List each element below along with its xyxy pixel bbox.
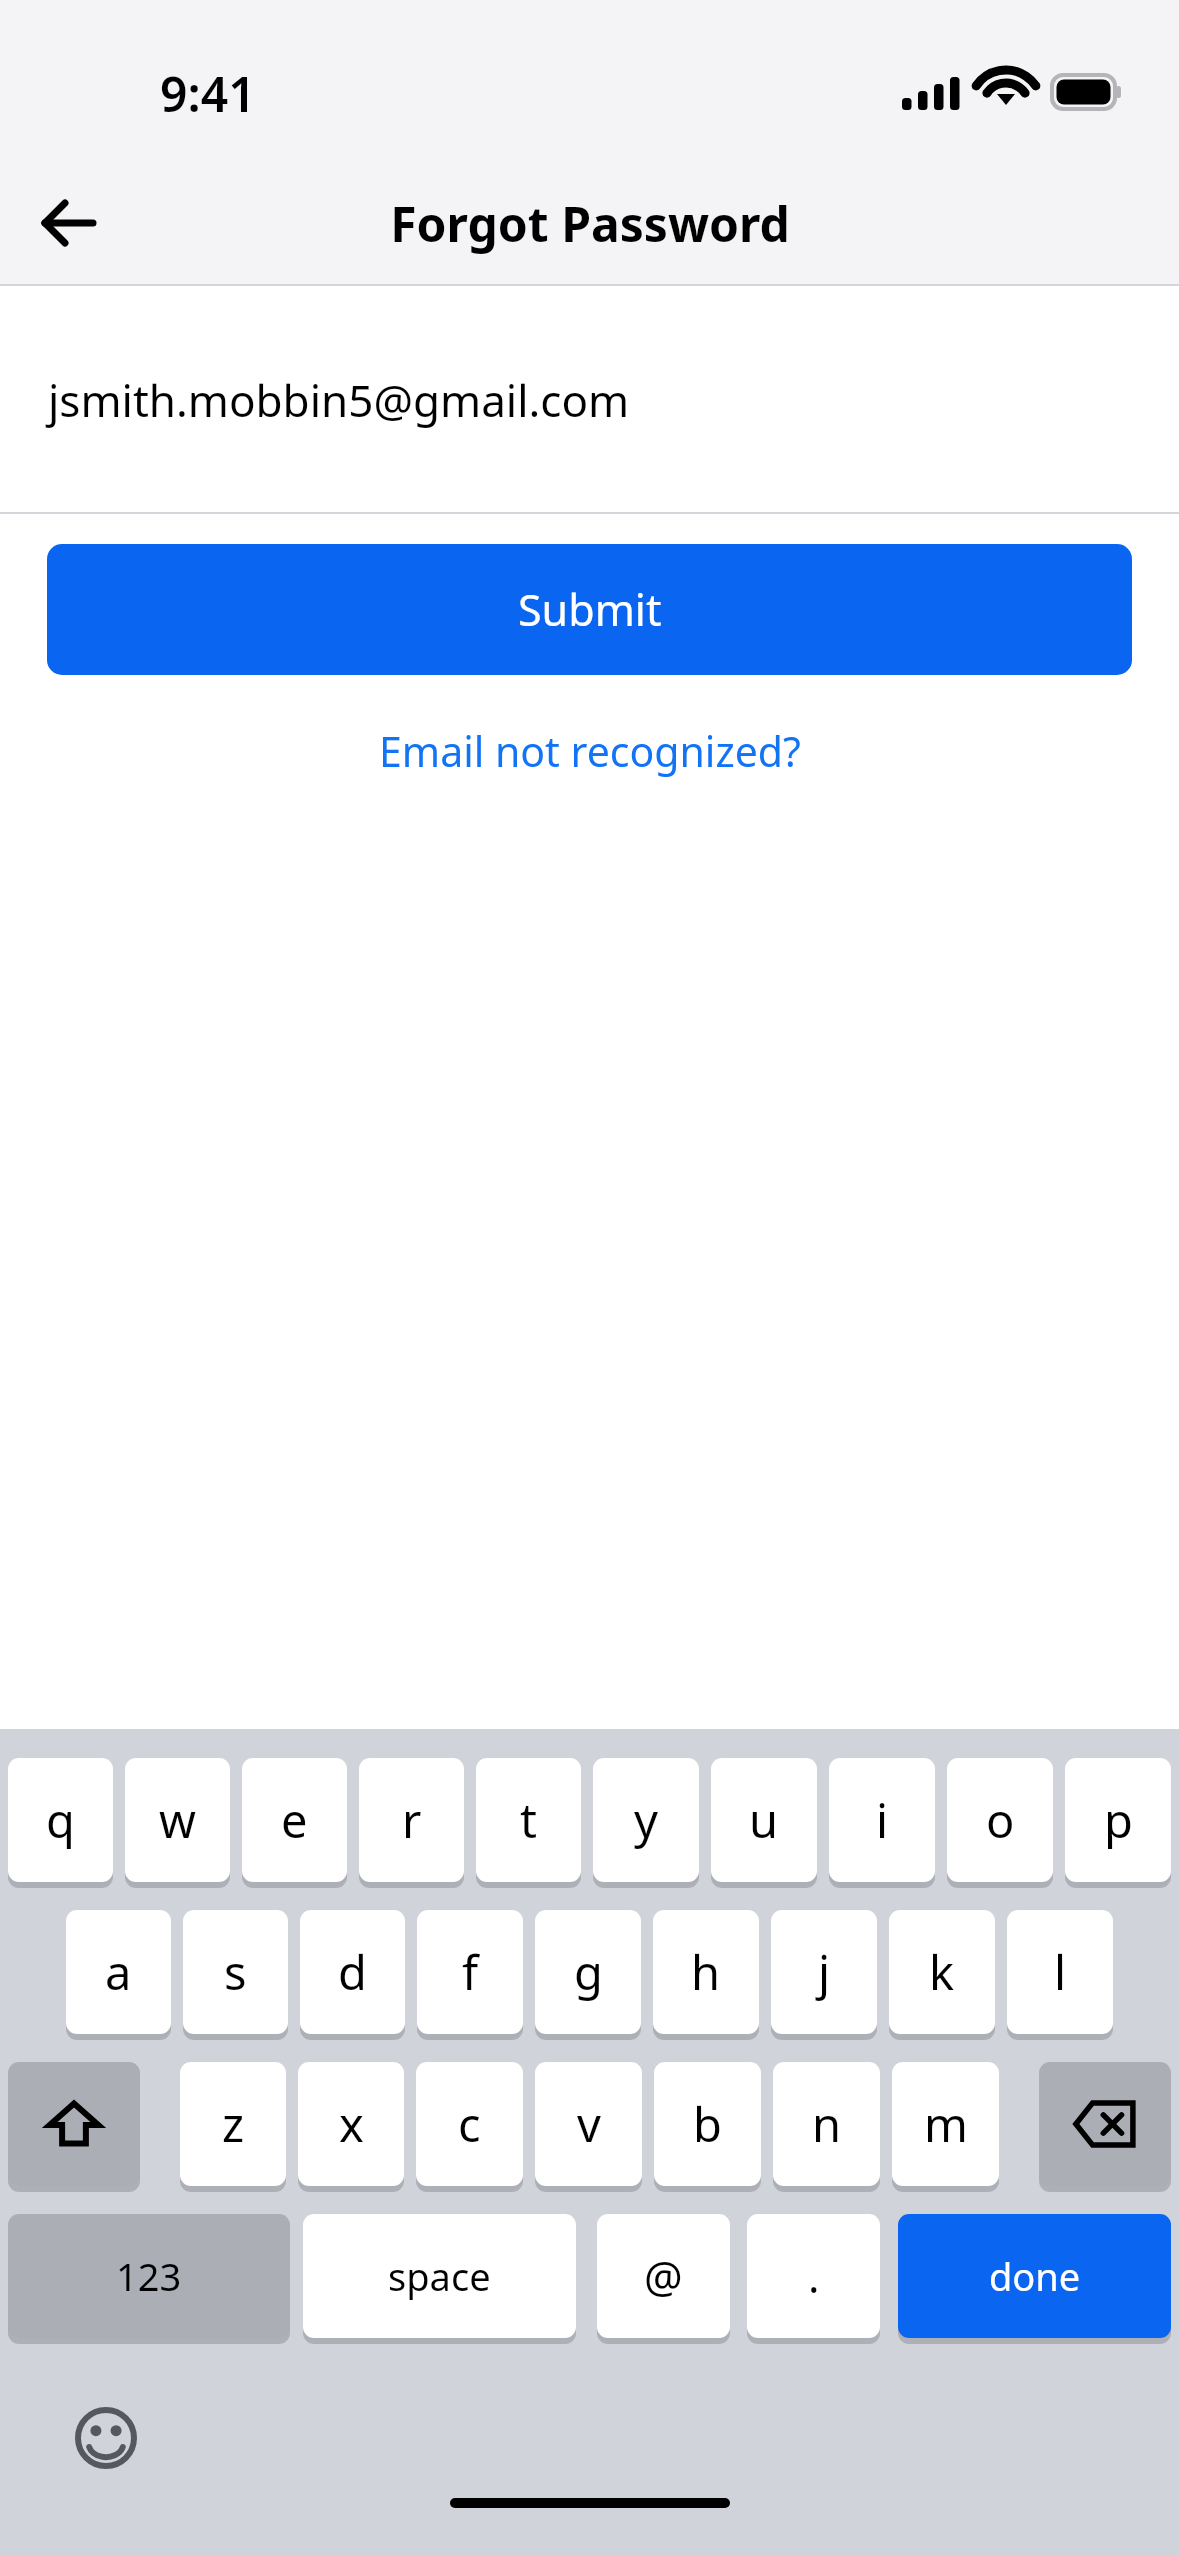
staticText: z — [222, 2092, 245, 2156]
button[interactable]: Email not recognized? — [359, 713, 821, 789]
button[interactable]: i — [829, 1758, 935, 1888]
staticText: d — [338, 1940, 367, 2004]
staticText: h — [691, 1940, 721, 2004]
staticText: r — [402, 1788, 422, 1852]
staticText: o — [986, 1788, 1015, 1852]
button[interactable]: done — [898, 2214, 1171, 2344]
staticText: Forgot Password — [390, 191, 790, 256]
button[interactable]: Submit — [47, 544, 1132, 675]
staticText: Email not recognized? — [379, 723, 801, 779]
staticText: i — [876, 1788, 889, 1852]
staticText: k — [929, 1940, 955, 2004]
button[interactable]: s — [183, 1910, 288, 2040]
button[interactable]: g — [535, 1910, 641, 2040]
button[interactable]: v — [535, 2062, 642, 2192]
staticText: n — [812, 2092, 842, 2156]
staticText: @ — [644, 2247, 683, 2306]
button[interactable]: Shift — [8, 2062, 140, 2192]
staticText: t — [520, 1788, 537, 1852]
button[interactable]: a — [66, 1910, 171, 2040]
button[interactable]: Back — [26, 180, 112, 266]
button[interactable]: t — [476, 1758, 581, 1888]
button[interactable]: y — [593, 1758, 699, 1888]
staticText: m — [924, 2092, 968, 2156]
button[interactable]: b — [654, 2062, 761, 2192]
button[interactable]: p — [1065, 1758, 1171, 1888]
staticText: 9:41 — [160, 61, 256, 126]
button[interactable]: @ — [597, 2214, 730, 2344]
button[interactable]: e — [242, 1758, 347, 1888]
button[interactable]: z — [180, 2062, 286, 2192]
staticText: q — [46, 1788, 75, 1852]
button[interactable]: space — [303, 2214, 576, 2344]
button[interactable]: Backspace — [1039, 2062, 1171, 2192]
staticText: v — [577, 2092, 601, 2156]
button[interactable]: w — [125, 1758, 230, 1888]
button[interactable]: . — [747, 2214, 880, 2344]
staticText: f — [462, 1940, 479, 2004]
staticText: b — [693, 2092, 722, 2156]
button[interactable]: l — [1007, 1910, 1113, 2040]
staticText: l — [1054, 1940, 1067, 2004]
staticText: u — [749, 1788, 779, 1852]
staticText: w — [159, 1788, 196, 1852]
button[interactable]: u — [711, 1758, 817, 1888]
button[interactable]: o — [947, 1758, 1053, 1888]
button[interactable]: Emoji keyboard — [62, 2394, 150, 2482]
button[interactable]: x — [298, 2062, 404, 2192]
button[interactable]: f — [417, 1910, 523, 2040]
button[interactable]: c — [416, 2062, 523, 2192]
staticText: 123 — [116, 2250, 182, 2302]
staticText: done — [989, 2250, 1081, 2302]
staticText: c — [458, 2092, 481, 2156]
staticText: s — [224, 1940, 247, 2004]
staticText: space — [388, 2250, 491, 2302]
button[interactable]: j — [771, 1910, 877, 2040]
staticText: a — [105, 1940, 132, 2004]
button[interactable]: h — [653, 1910, 759, 2040]
button[interactable]: m — [892, 2062, 999, 2192]
staticText: e — [281, 1788, 308, 1852]
button[interactable]: n — [773, 2062, 880, 2192]
staticText: Submit — [518, 580, 662, 639]
staticText: y — [634, 1788, 658, 1852]
staticText: jsmith.mobbin5@gmail.com — [48, 370, 630, 430]
staticText: x — [339, 2092, 364, 2156]
staticText: . — [808, 2247, 820, 2306]
button[interactable]: k — [889, 1910, 995, 2040]
staticText: g — [574, 1940, 603, 2004]
button[interactable]: d — [300, 1910, 405, 2040]
staticText: j — [818, 1940, 831, 2004]
button[interactable]: r — [359, 1758, 464, 1888]
button[interactable]: jsmith.mobbin5@gmail.com — [0, 286, 1179, 514]
button[interactable]: q — [8, 1758, 113, 1888]
staticText: p — [1104, 1788, 1133, 1852]
button[interactable]: 123 — [8, 2214, 290, 2344]
